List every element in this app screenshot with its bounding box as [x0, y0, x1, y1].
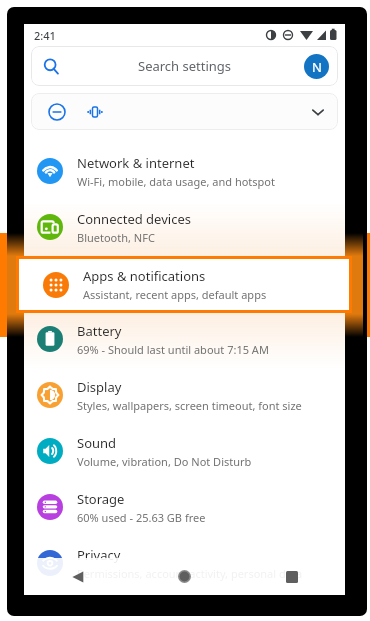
staticText: Apps & notifications — [77, 266, 200, 284]
staticText: 2:41 — [34, 28, 56, 43]
button[interactable]: Apps & notifications — [24, 255, 345, 311]
staticText: Assistant, recent apps, default apps — [77, 286, 261, 301]
staticText: Wi-Fi, mobile, data usage, and hotspot — [77, 174, 275, 189]
staticText: Network & internet — [77, 154, 195, 172]
staticText: Assistant, recent apps, default apps — [83, 287, 267, 302]
button[interactable]: Privacy — [24, 535, 345, 591]
button[interactable]: Account — [304, 54, 329, 79]
button[interactable]: Back — [24, 558, 131, 595]
staticText: Volume, vibration, Do Not Disturb — [77, 454, 252, 469]
button[interactable]: Search settings — [31, 46, 338, 86]
button[interactable]: Apps & notifications — [19, 259, 349, 310]
button[interactable]: Display — [24, 367, 345, 423]
staticText: Connected devices — [77, 210, 191, 228]
staticText: 60% used - 25.63 GB free — [77, 510, 206, 525]
staticText: Styles, wallpapers, screen timeout, font… — [77, 398, 302, 413]
staticText: Sound — [77, 434, 117, 452]
button[interactable]: Connected devices — [24, 199, 345, 255]
staticText: Privacy — [77, 546, 121, 564]
button[interactable]: Network & internet — [24, 143, 345, 199]
staticText: Apps & notifications — [83, 267, 206, 285]
staticText: Storage — [77, 490, 125, 508]
staticText: Battery — [77, 322, 122, 340]
button[interactable]: Battery — [24, 311, 345, 367]
button[interactable]: Storage — [24, 479, 345, 535]
staticText: Display — [77, 378, 122, 396]
button[interactable]: Expand — [31, 93, 338, 130]
staticText: Permissions, account activity, personal … — [77, 566, 303, 581]
staticText: 69% - Should last until about 7:15 AM — [77, 342, 269, 357]
button[interactable]: Sound — [24, 423, 345, 479]
other: Expand — [311, 105, 325, 119]
button[interactable]: Home — [131, 558, 238, 595]
staticText: Search settings — [138, 57, 232, 75]
button[interactable]: Recent apps — [238, 558, 345, 595]
other: Search — [43, 58, 60, 75]
staticText: N — [312, 58, 322, 76]
staticText: Bluetooth, NFC — [77, 230, 155, 245]
